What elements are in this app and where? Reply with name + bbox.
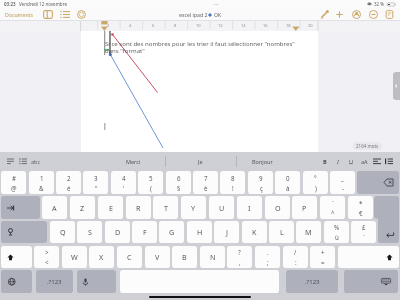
staticText: U — [219, 203, 225, 213]
button[interactable]: Y — [181, 196, 206, 219]
button[interactable]: Changer de clavier — [1, 270, 32, 293]
button[interactable]: U — [209, 196, 234, 219]
button[interactable]: F — [132, 221, 157, 243]
button[interactable]: 2 — [56, 171, 81, 194]
button[interactable]: 2164 mots — [353, 142, 382, 150]
button[interactable]: Format — [320, 8, 329, 21]
button[interactable]: C — [117, 246, 142, 268]
button[interactable]: 9 — [248, 171, 273, 194]
button[interactable]: ° — [303, 171, 328, 194]
button[interactable]: X — [89, 246, 114, 268]
button[interactable]: W — [62, 246, 87, 268]
button[interactable]: G — [159, 221, 184, 243]
button[interactable]: % — [324, 221, 349, 243]
button[interactable]: Majuscules — [1, 221, 47, 243]
button[interactable]: . — [255, 246, 280, 268]
button[interactable]: Insérer — [335, 8, 344, 21]
staticText: Vendredi 12 novembre — [19, 1, 67, 7]
button[interactable]: S — [77, 221, 102, 243]
button[interactable]: E — [98, 196, 123, 219]
staticText: R — [136, 203, 141, 213]
button[interactable]: Afficher le panneau — [393, 72, 400, 100]
button[interactable]: 5 — [138, 171, 163, 194]
button[interactable]: J — [214, 221, 239, 243]
staticText: V — [155, 252, 160, 262]
staticText: è — [204, 184, 208, 192]
button[interactable]: + — [310, 246, 335, 268]
button[interactable]: Mise en forme — [7, 158, 14, 165]
button[interactable]: I — [332, 152, 344, 171]
button[interactable]: Z — [70, 196, 95, 219]
button[interactable]: L — [269, 221, 294, 243]
staticText: ( — [150, 184, 152, 192]
button[interactable]: V — [145, 246, 170, 268]
staticText: # — [12, 174, 16, 182]
button[interactable]: N — [200, 246, 225, 268]
button[interactable]: 7 — [193, 171, 218, 194]
button[interactable]: .?123 — [36, 270, 73, 293]
button[interactable]: _ — [330, 171, 355, 194]
button[interactable]: Liste — [60, 8, 70, 21]
button[interactable]: Alignement — [373, 158, 381, 165]
button[interactable]: abc — [29, 152, 43, 171]
button[interactable]: 3 — [83, 171, 108, 194]
staticText: S — [88, 227, 92, 237]
staticText: 9 — [259, 174, 263, 182]
button[interactable]: M — [296, 221, 321, 243]
button[interactable]: Document — [385, 8, 394, 21]
button[interactable]: R — [126, 196, 151, 219]
button[interactable]: D — [105, 221, 130, 243]
button[interactable]: 8 — [220, 171, 245, 194]
button[interactable]: / — [283, 246, 308, 268]
button[interactable]: ¨ — [320, 196, 345, 219]
button[interactable]: A — [42, 196, 67, 219]
button[interactable]: > — [34, 246, 59, 268]
staticText: B — [323, 158, 327, 165]
button[interactable]: O — [265, 196, 290, 219]
button[interactable]: .?123 — [286, 270, 338, 293]
button[interactable]: U — [345, 152, 357, 171]
button[interactable]: Retour — [374, 196, 399, 243]
button[interactable]: B — [172, 246, 197, 268]
button[interactable]: 1 — [29, 171, 54, 194]
button[interactable]: Collaborer — [352, 8, 361, 21]
button[interactable]: # — [1, 171, 26, 194]
button[interactable]: Liste — [19, 158, 27, 165]
button[interactable]: T — [153, 196, 178, 219]
button[interactable]: Dictée — [77, 270, 116, 293]
button[interactable]: Retrait — [385, 158, 393, 165]
staticText: aA — [361, 158, 368, 165]
button[interactable]: Majuscule — [1, 246, 32, 268]
staticText: 6 — [177, 174, 181, 182]
button[interactable]: K — [242, 221, 267, 243]
button[interactable]: Je — [174, 152, 226, 171]
button[interactable]: Q — [50, 221, 75, 243]
button[interactable]: H — [187, 221, 212, 243]
button[interactable]: Merci — [107, 152, 159, 171]
button[interactable]: Zoom arrière — [369, 8, 378, 21]
button[interactable]: Supprimer — [357, 171, 399, 194]
button[interactable]: £ — [351, 221, 376, 243]
button[interactable]: I — [237, 196, 262, 219]
button[interactable]: 4 — [111, 171, 136, 194]
staticText: % — [334, 223, 340, 231]
staticText: @ — [11, 184, 17, 192]
button[interactable]: ? — [227, 246, 252, 268]
button[interactable]: Majuscule droite — [338, 246, 399, 268]
button[interactable]: Documents — [4, 8, 34, 21]
button[interactable]: * — [348, 196, 373, 219]
staticText: ^ — [331, 209, 335, 217]
staticText: + — [321, 248, 325, 256]
button[interactable]: 6 — [166, 171, 191, 194]
button[interactable]: Bonjour — [236, 152, 288, 171]
button[interactable]: Aide — [77, 8, 86, 21]
staticText: / — [294, 248, 297, 256]
button[interactable]: P — [292, 196, 317, 219]
button[interactable]: Afficher la barre latérale — [43, 8, 53, 21]
button[interactable]: B — [319, 152, 331, 171]
button[interactable]: aA — [358, 152, 370, 171]
button[interactable]: Masquer le clavier — [344, 270, 398, 293]
button[interactable]: Tabulation — [1, 196, 40, 219]
button[interactable]: 0 — [275, 171, 300, 194]
